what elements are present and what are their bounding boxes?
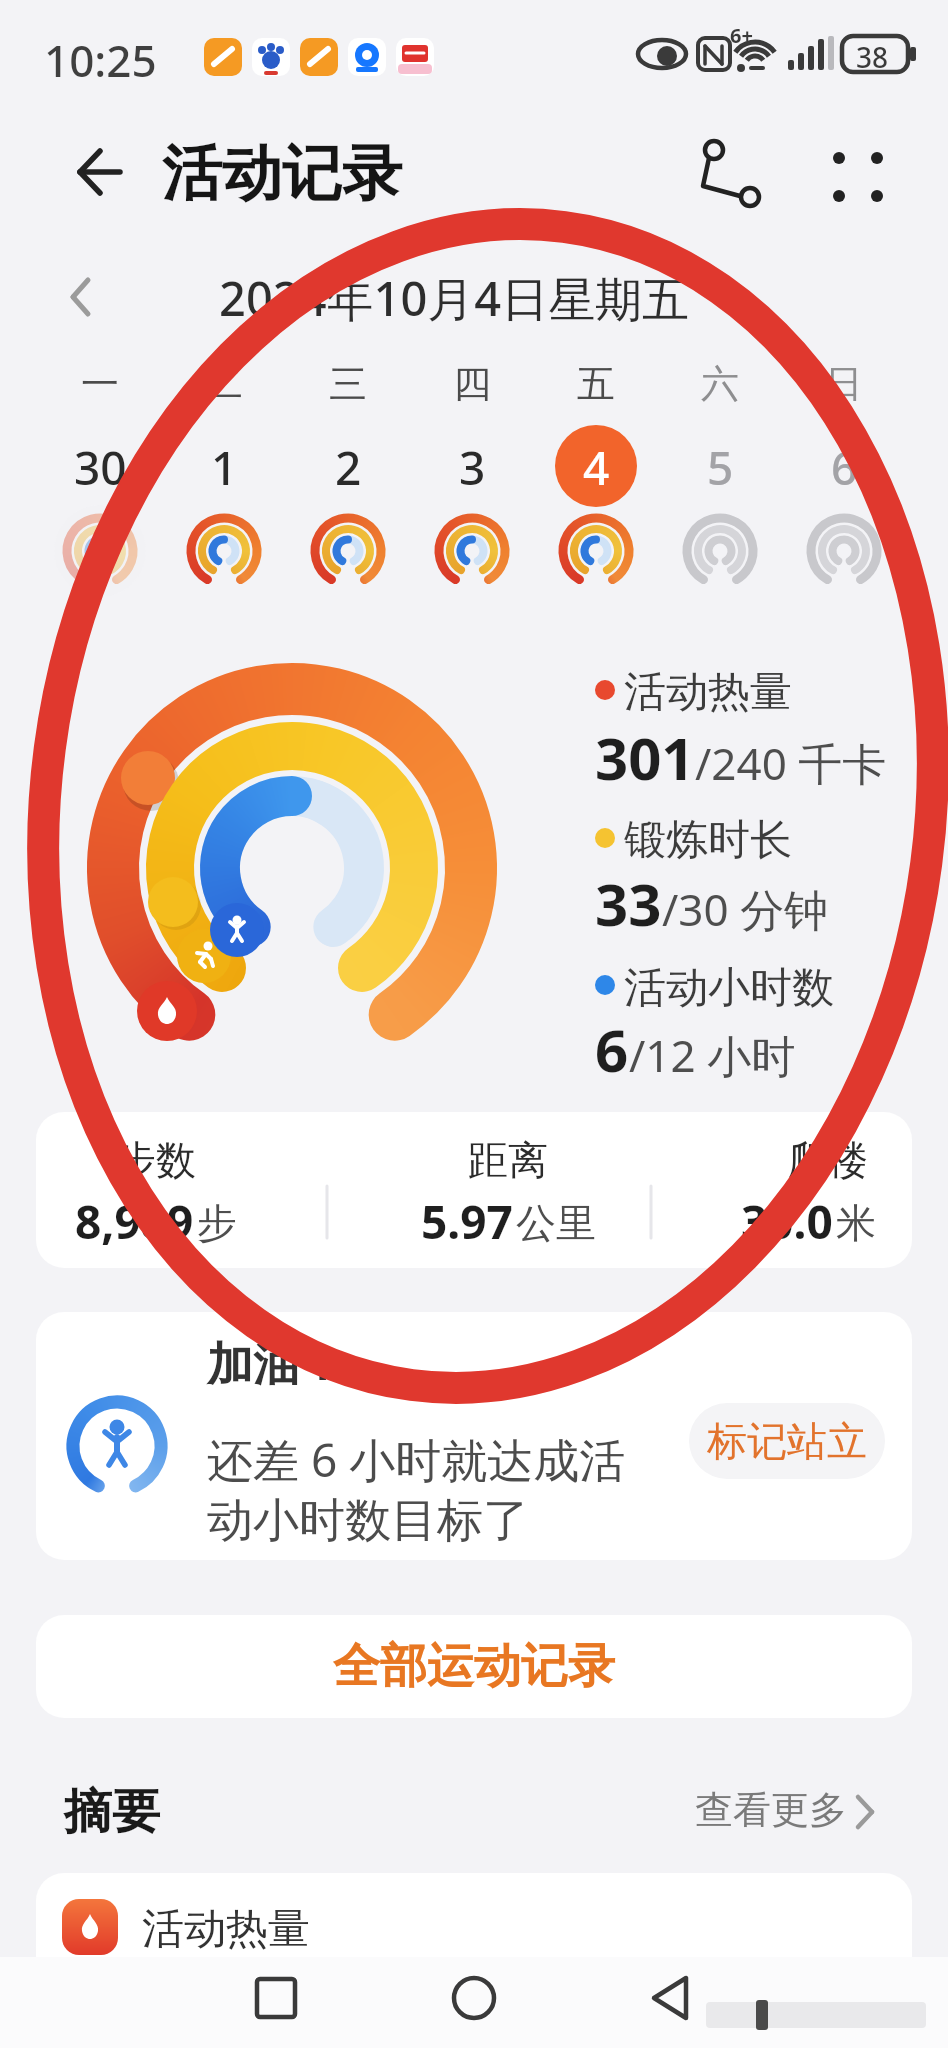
button[interactable]	[36, 1873, 912, 1957]
staticText: 加油！	[207, 1336, 345, 1394]
button[interactable]	[622, 1960, 722, 2048]
staticText: 距离	[468, 1135, 548, 1185]
button[interactable]: 3	[0, 0, 100, 60]
button[interactable]	[818, 136, 898, 212]
button[interactable]: 1	[0, 0, 100, 60]
staticText: 活动小时数	[624, 962, 834, 1015]
staticText: 活动记录	[162, 136, 402, 212]
staticText: 6+	[730, 22, 753, 49]
button[interactable]	[686, 136, 766, 212]
staticText: 日	[825, 360, 863, 408]
button[interactable]	[56, 272, 106, 322]
staticText: 8,989	[75, 1190, 194, 1250]
staticText: 爬楼	[788, 1135, 868, 1185]
staticText: 2	[335, 436, 362, 496]
staticText: 2024年10月4日星期五	[219, 266, 690, 328]
button[interactable]	[424, 1960, 524, 2048]
staticText: 33	[595, 864, 662, 943]
staticText: 还差 6 小时就达成活	[207, 1428, 626, 1491]
staticText: 10:25	[44, 30, 157, 90]
button[interactable]: 5	[0, 0, 100, 60]
button[interactable]	[56, 140, 126, 206]
staticText: 五	[577, 360, 615, 408]
button[interactable]: 全部运动记录	[36, 1615, 912, 1718]
button[interactable]: 查看更多	[680, 1782, 890, 1842]
button[interactable]: 4	[0, 0, 100, 60]
staticText: 摘要	[64, 1782, 160, 1842]
button[interactable]: 标记站立	[689, 1403, 885, 1479]
staticText: 四	[453, 360, 491, 408]
staticText: 公里	[516, 1198, 596, 1248]
button[interactable]	[226, 1960, 326, 2048]
button[interactable]: 6	[0, 0, 100, 60]
staticText: 查看更多	[695, 1786, 847, 1834]
staticText: 活动热量	[624, 666, 792, 719]
staticText: 6	[831, 436, 858, 496]
staticText: 5.97	[421, 1190, 513, 1250]
button[interactable]: 2024年10月4日星期五	[0, 0, 908, 62]
staticText: 六	[701, 360, 739, 408]
staticText: /12 小时	[629, 1025, 796, 1085]
staticText: 4	[583, 436, 610, 496]
staticText: /240 千卡	[695, 733, 887, 793]
staticText: 标记站立	[707, 1416, 867, 1466]
staticText: 30.0	[741, 1190, 833, 1250]
staticText: 活动热量	[142, 1903, 310, 1956]
staticText: 38	[856, 38, 889, 76]
staticText: 30	[74, 436, 127, 496]
button[interactable]	[36, 1112, 912, 1268]
button[interactable]: 30	[0, 0, 100, 60]
staticText: 301	[595, 718, 695, 797]
staticText: 步	[197, 1198, 237, 1248]
staticText: 1	[211, 436, 238, 496]
staticText: 3	[459, 436, 486, 496]
staticText: 步数	[116, 1135, 196, 1185]
staticText: 6	[595, 1010, 629, 1089]
staticText: 5	[707, 436, 734, 496]
staticText: /30 分钟	[662, 879, 829, 939]
button[interactable]: 2	[0, 0, 100, 60]
staticText: 米	[836, 1198, 876, 1248]
button[interactable]	[555, 425, 637, 507]
staticText: 全部运动记录	[333, 1637, 615, 1696]
staticText: 一	[81, 360, 119, 408]
staticText: 锻炼时长	[624, 814, 792, 867]
staticText: 二	[205, 360, 243, 408]
staticText: 三	[329, 360, 367, 408]
staticText: 动小时数目标了	[207, 1492, 529, 1550]
